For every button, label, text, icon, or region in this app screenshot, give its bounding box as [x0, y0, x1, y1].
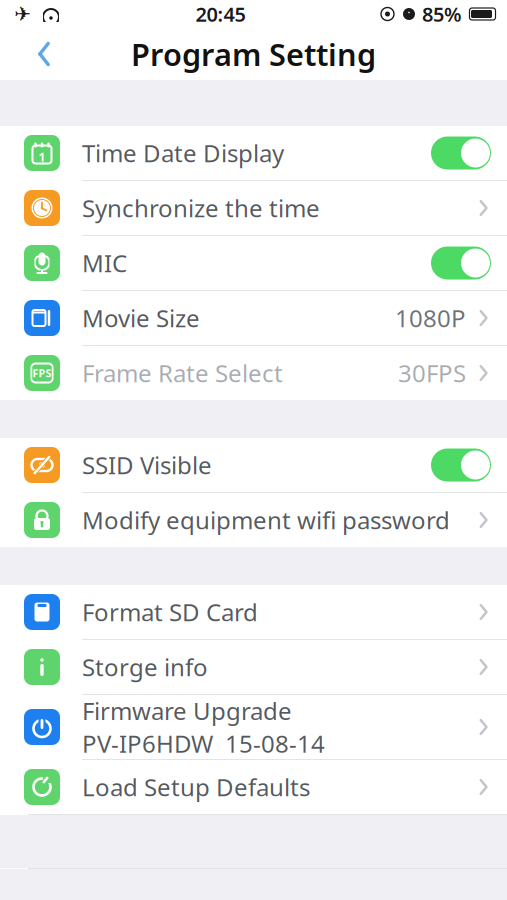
button[interactable]: Modify equipment wifi password	[0, 493, 507, 547]
button[interactable]: MIC	[0, 236, 507, 290]
button[interactable]: Movie Size	[0, 291, 507, 345]
staticText: PV-IP6HDW 15-08-14	[82, 727, 325, 759]
staticText: Time Date Display	[82, 137, 284, 169]
staticText: Format SD Card	[82, 596, 258, 628]
staticText: 20:45	[195, 1, 245, 27]
button[interactable]: Load Setup Defaults	[0, 760, 507, 814]
staticText: Program Setting	[131, 34, 376, 74]
button[interactable]: 1	[0, 126, 507, 180]
staticText: 30FPS	[398, 357, 466, 389]
button[interactable]: Format SD Card	[0, 585, 507, 639]
button[interactable]: FPS	[0, 346, 507, 400]
button[interactable]: Storge info	[0, 640, 507, 694]
staticText: Synchronize the time	[82, 192, 320, 224]
button[interactable]: Firmware Upgrade	[0, 695, 507, 759]
button[interactable]: Back	[22, 32, 66, 76]
button[interactable]: Synchronize the time	[0, 181, 507, 235]
staticText: MIC	[82, 247, 127, 279]
staticText: Load Setup Defaults	[82, 771, 310, 803]
staticText: 85%	[422, 1, 462, 27]
staticText: Storge info	[82, 651, 208, 683]
staticText: Modify equipment wifi password	[82, 504, 450, 536]
button[interactable]: SSID Visible	[0, 438, 507, 492]
staticText: Firmware Upgrade	[82, 695, 292, 726]
staticText: SSID Visible	[82, 449, 212, 481]
staticText: 1	[38, 149, 45, 165]
staticText: Movie Size	[82, 302, 200, 334]
staticText: Frame Rate Select	[82, 357, 283, 389]
staticText: FPS	[32, 366, 51, 380]
staticText: 1080P	[395, 302, 466, 334]
staticText: ✈	[14, 3, 31, 25]
